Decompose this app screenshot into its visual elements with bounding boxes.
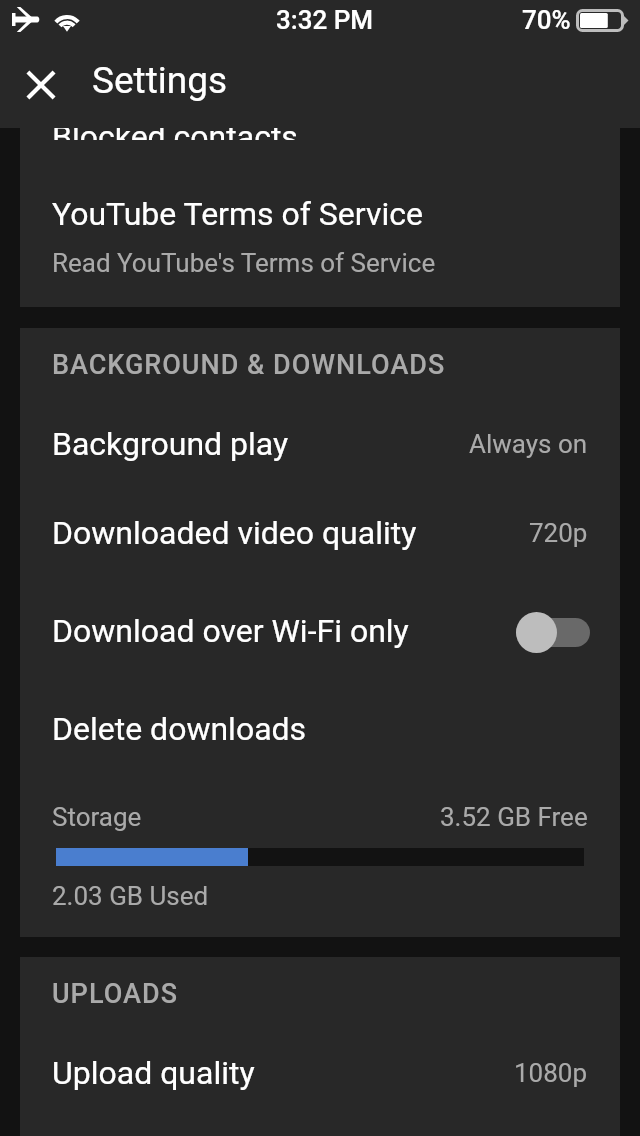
- staticText: Blocked contacts: [52, 118, 298, 140]
- staticText: Settings: [92, 59, 228, 102]
- staticText: 3.52 GB Free: [440, 802, 588, 832]
- button[interactable]: Blocked contacts: [20, 115, 620, 137]
- staticText: Storage: [52, 802, 142, 832]
- staticText: 3:32 PM: [276, 5, 374, 35]
- staticText: Delete downloads: [52, 710, 588, 748]
- staticText: Background play: [52, 425, 469, 463]
- button[interactable]: Download over Wi-Fi only: [20, 582, 620, 680]
- staticText: YouTube Terms of Service: [52, 195, 423, 233]
- button[interactable]: Upload quality: [20, 1033, 620, 1113]
- button[interactable]: YouTube Terms of Service: [20, 137, 620, 307]
- staticText: 2.03 GB Used: [52, 881, 209, 911]
- staticText: Upload quality: [52, 1054, 514, 1092]
- staticText: BACKGROUND & DOWNLOADS: [52, 349, 446, 381]
- staticText: 1080p: [514, 1058, 588, 1088]
- staticText: UPLOADS: [52, 978, 178, 1010]
- staticText: 70%: [522, 5, 571, 35]
- button[interactable]: Close: [6, 52, 76, 122]
- staticText: Downloaded video quality: [52, 514, 529, 552]
- staticText: Download over Wi-Fi only: [52, 612, 514, 650]
- button[interactable]: Delete downloads: [20, 680, 620, 778]
- staticText: Always on: [469, 429, 588, 459]
- staticText: Read YouTube's Terms of Service: [52, 248, 436, 278]
- button[interactable]: Downloaded video quality: [20, 484, 620, 582]
- button[interactable]: Background play: [20, 404, 620, 484]
- staticText: 720p: [529, 518, 588, 548]
